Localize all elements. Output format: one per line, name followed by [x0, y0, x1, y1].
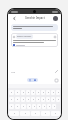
- button[interactable]: [51, 90, 55, 95]
- staticText: Genshin Impact: [25, 16, 45, 20]
- button[interactable]: [51, 111, 60, 116]
- button[interactable]: [21, 104, 26, 109]
- button[interactable]: [42, 104, 46, 109]
- button[interactable]: [52, 104, 56, 109]
- button[interactable]: Profile: [53, 16, 58, 21]
- staticText: Ask: [11, 70, 15, 73]
- button[interactable]: [51, 97, 55, 102]
- button[interactable]: [56, 90, 60, 95]
- button[interactable]: [9, 111, 19, 116]
- button[interactable]: [31, 97, 35, 102]
- button[interactable]: [21, 97, 25, 102]
- button[interactable]: Search Results: [11, 33, 58, 47]
- button[interactable]: [9, 104, 14, 109]
- button[interactable]: [11, 24, 58, 31]
- button[interactable]: [15, 104, 20, 109]
- button[interactable]: [41, 111, 50, 116]
- button[interactable]: [9, 97, 14, 102]
- button[interactable]: [46, 90, 50, 95]
- button[interactable]: [36, 90, 40, 95]
- button[interactable]: [21, 90, 25, 95]
- button[interactable]: Microphone: [27, 78, 38, 82]
- button[interactable]: [36, 97, 40, 102]
- button[interactable]: [31, 90, 35, 95]
- button[interactable]: [32, 104, 36, 109]
- button[interactable]: [37, 104, 41, 109]
- button[interactable]: [15, 97, 20, 102]
- button[interactable]: [56, 97, 60, 102]
- button[interactable]: Back: [11, 15, 17, 21]
- button[interactable]: [31, 111, 40, 116]
- button[interactable]: [27, 104, 31, 109]
- button[interactable]: [20, 111, 30, 116]
- button[interactable]: Edit: [55, 70, 58, 73]
- button[interactable]: [47, 104, 51, 109]
- button[interactable]: [26, 90, 30, 95]
- button[interactable]: [26, 97, 30, 102]
- button[interactable]: Send: [55, 79, 58, 82]
- button[interactable]: [15, 90, 20, 95]
- button[interactable]: [9, 90, 14, 95]
- button[interactable]: [46, 97, 50, 102]
- button[interactable]: [41, 97, 45, 102]
- other: Camera: [34, 79, 36, 81]
- staticText: Search Results: [17, 35, 32, 38]
- button[interactable]: [41, 90, 45, 95]
